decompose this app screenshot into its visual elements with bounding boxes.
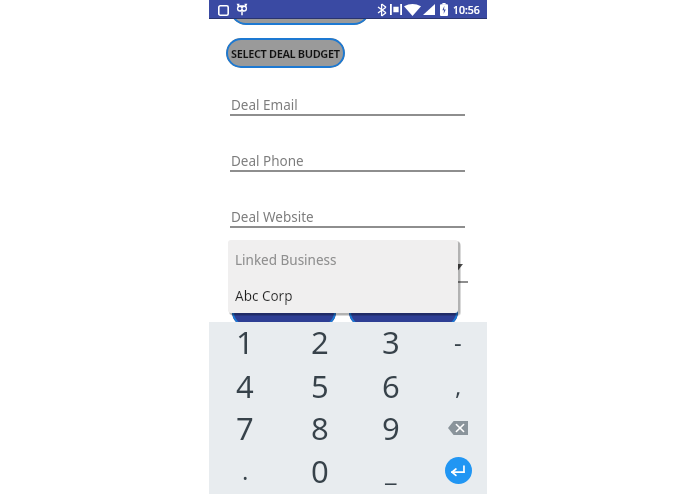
staticText: Abc Corp: [235, 287, 293, 305]
staticText: 3: [382, 321, 400, 363]
staticText: _: [385, 453, 397, 488]
button[interactable]: [349, 297, 458, 327]
staticText: 9: [382, 407, 400, 449]
button[interactable]: [424, 449, 492, 492]
staticText: 10:56: [453, 3, 480, 17]
button[interactable]: .: [211, 449, 279, 492]
button[interactable]: 7: [211, 406, 279, 449]
button[interactable]: 4: [211, 364, 279, 407]
button[interactable]: 2: [286, 320, 354, 363]
button[interactable]: 8: [286, 406, 354, 449]
button[interactable]: 9: [357, 406, 425, 449]
button[interactable]: Linked Business: [228, 240, 458, 276]
button[interactable]: ,: [424, 364, 492, 407]
staticText: ,: [455, 369, 462, 402]
staticText: 0: [311, 450, 329, 492]
button[interactable]: SELECT DEAL BUDGET: [226, 38, 345, 68]
button[interactable]: Abc Corp: [228, 277, 458, 313]
staticText: .: [242, 454, 249, 487]
button[interactable]: -: [424, 320, 492, 363]
staticText: 6: [382, 365, 400, 407]
button[interactable]: [232, 297, 336, 327]
button[interactable]: Deal Email: [230, 92, 465, 118]
button[interactable]: Deal Phone: [230, 148, 465, 174]
button[interactable]: [424, 406, 492, 449]
staticText: Linked Business: [235, 251, 337, 269]
button[interactable]: Deal Website: [230, 204, 465, 230]
button[interactable]: 1: [211, 320, 279, 363]
button[interactable]: 3: [357, 320, 425, 363]
button[interactable]: _: [357, 449, 425, 492]
staticText: Deal Phone: [231, 152, 304, 170]
staticText: 7: [236, 407, 254, 449]
staticText: 1: [236, 321, 254, 363]
button[interactable]: 0: [286, 449, 354, 492]
button[interactable]: [230, 0, 370, 25]
button[interactable]: 6: [357, 364, 425, 407]
staticText: Deal Website: [231, 208, 314, 226]
staticText: Deal Email: [231, 96, 298, 114]
staticText: 2: [311, 321, 329, 363]
staticText: 5: [311, 365, 329, 407]
staticText: SELECT DEAL BUDGET: [231, 46, 340, 61]
staticText: 8: [311, 407, 329, 449]
staticText: 4: [236, 365, 254, 407]
staticText: -: [454, 325, 462, 358]
button[interactable]: 5: [286, 364, 354, 407]
